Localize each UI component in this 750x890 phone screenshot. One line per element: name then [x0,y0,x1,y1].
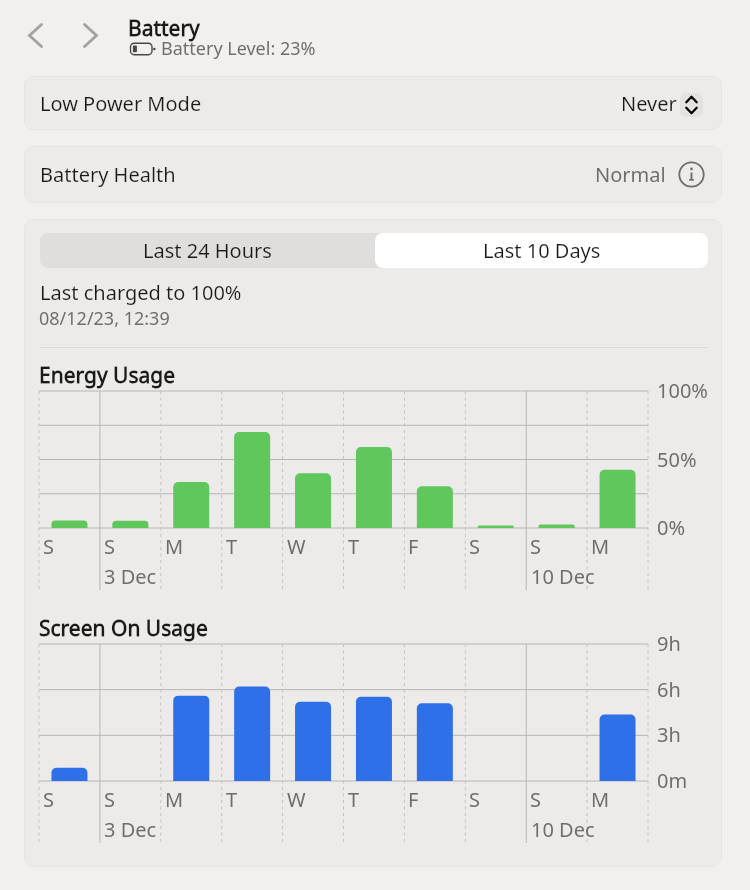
staticText: M [591,533,610,560]
staticText: 3 Dec [104,816,157,843]
staticText: F [408,786,419,813]
staticText: W [287,786,306,813]
staticText: Normal [595,161,666,188]
staticText: 08/12/23, 12:39 [39,306,170,331]
button[interactable]: Last 10 Days [375,233,708,268]
button[interactable]: Battery Health [24,146,722,203]
staticText: M [165,533,184,560]
staticText: W [287,533,306,560]
staticText: 3 Dec [104,563,157,590]
staticText: Energy Usage [39,361,175,390]
staticText: 0% [657,514,686,541]
staticText: M [165,786,184,813]
button[interactable]: Low Power Mode [24,76,722,130]
staticText: T [348,533,360,560]
staticText: S [530,533,541,560]
staticText: Last charged to 100% [40,279,242,306]
staticText: 10 Dec [531,816,595,843]
staticText: S [43,533,54,560]
staticText: 9h [657,630,681,657]
staticText: Battery Level: 23% [161,36,316,61]
staticText: Screen On Usage [39,614,208,643]
staticText: 6h [657,676,681,703]
staticText: S [469,533,480,560]
button[interactable]: Forward [73,18,108,53]
staticText: S [530,786,541,813]
staticText: Last 24 Hours [143,237,272,264]
staticText: 50% [657,446,697,473]
staticText: 0m [657,767,688,794]
button[interactable]: Back [18,18,53,53]
button[interactable]: Change Low Power Mode [680,93,703,117]
staticText: T [226,533,238,560]
staticText: Low Power Mode [40,90,202,117]
staticText: S [104,786,115,813]
staticText: M [591,786,610,813]
staticText: T [348,786,360,813]
button[interactable]: Battery health info [678,160,707,189]
staticText: Battery [128,14,200,43]
staticText: F [408,533,419,560]
staticText: Battery Health [40,161,176,188]
button[interactable]: Last 24 Hours [40,233,375,268]
staticText: S [469,786,480,813]
staticText: T [226,786,238,813]
staticText: S [43,786,54,813]
staticText: Last 10 Days [483,237,601,264]
staticText: 3h [657,721,681,748]
staticText: 10 Dec [531,563,595,590]
staticText: S [104,533,115,560]
staticText: 100% [657,377,708,404]
staticText: Never [621,90,677,117]
